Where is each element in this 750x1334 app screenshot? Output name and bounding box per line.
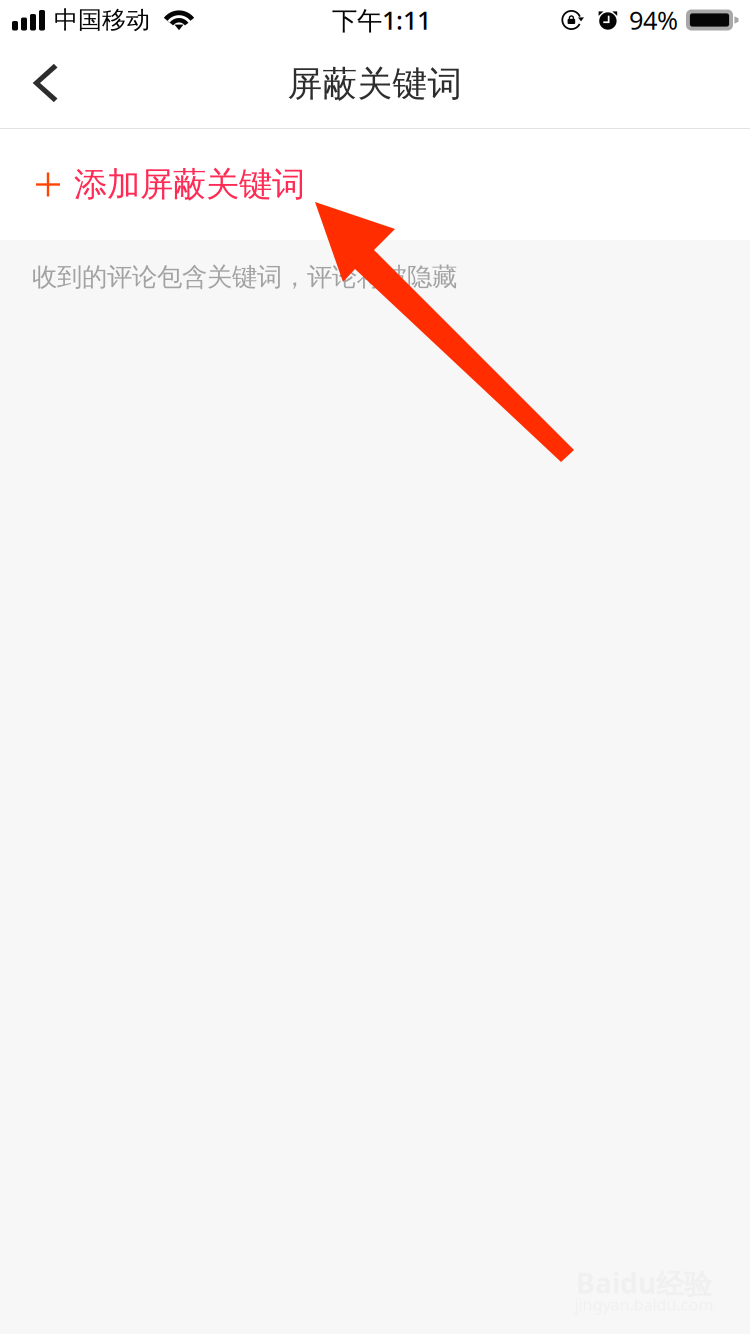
staticText: 中国移动 <box>54 5 150 35</box>
staticText: 添加屏蔽关键词 <box>74 164 305 205</box>
button[interactable]: Back <box>0 40 96 128</box>
staticText: 94% <box>629 3 678 37</box>
staticText: 下午1:11 <box>332 3 431 37</box>
button[interactable]: 添加屏蔽关键词 <box>0 129 750 240</box>
staticText: 收到的评论包含关键词，评论将被隐藏 <box>32 261 457 292</box>
staticText: 屏蔽关键词 <box>287 63 462 105</box>
